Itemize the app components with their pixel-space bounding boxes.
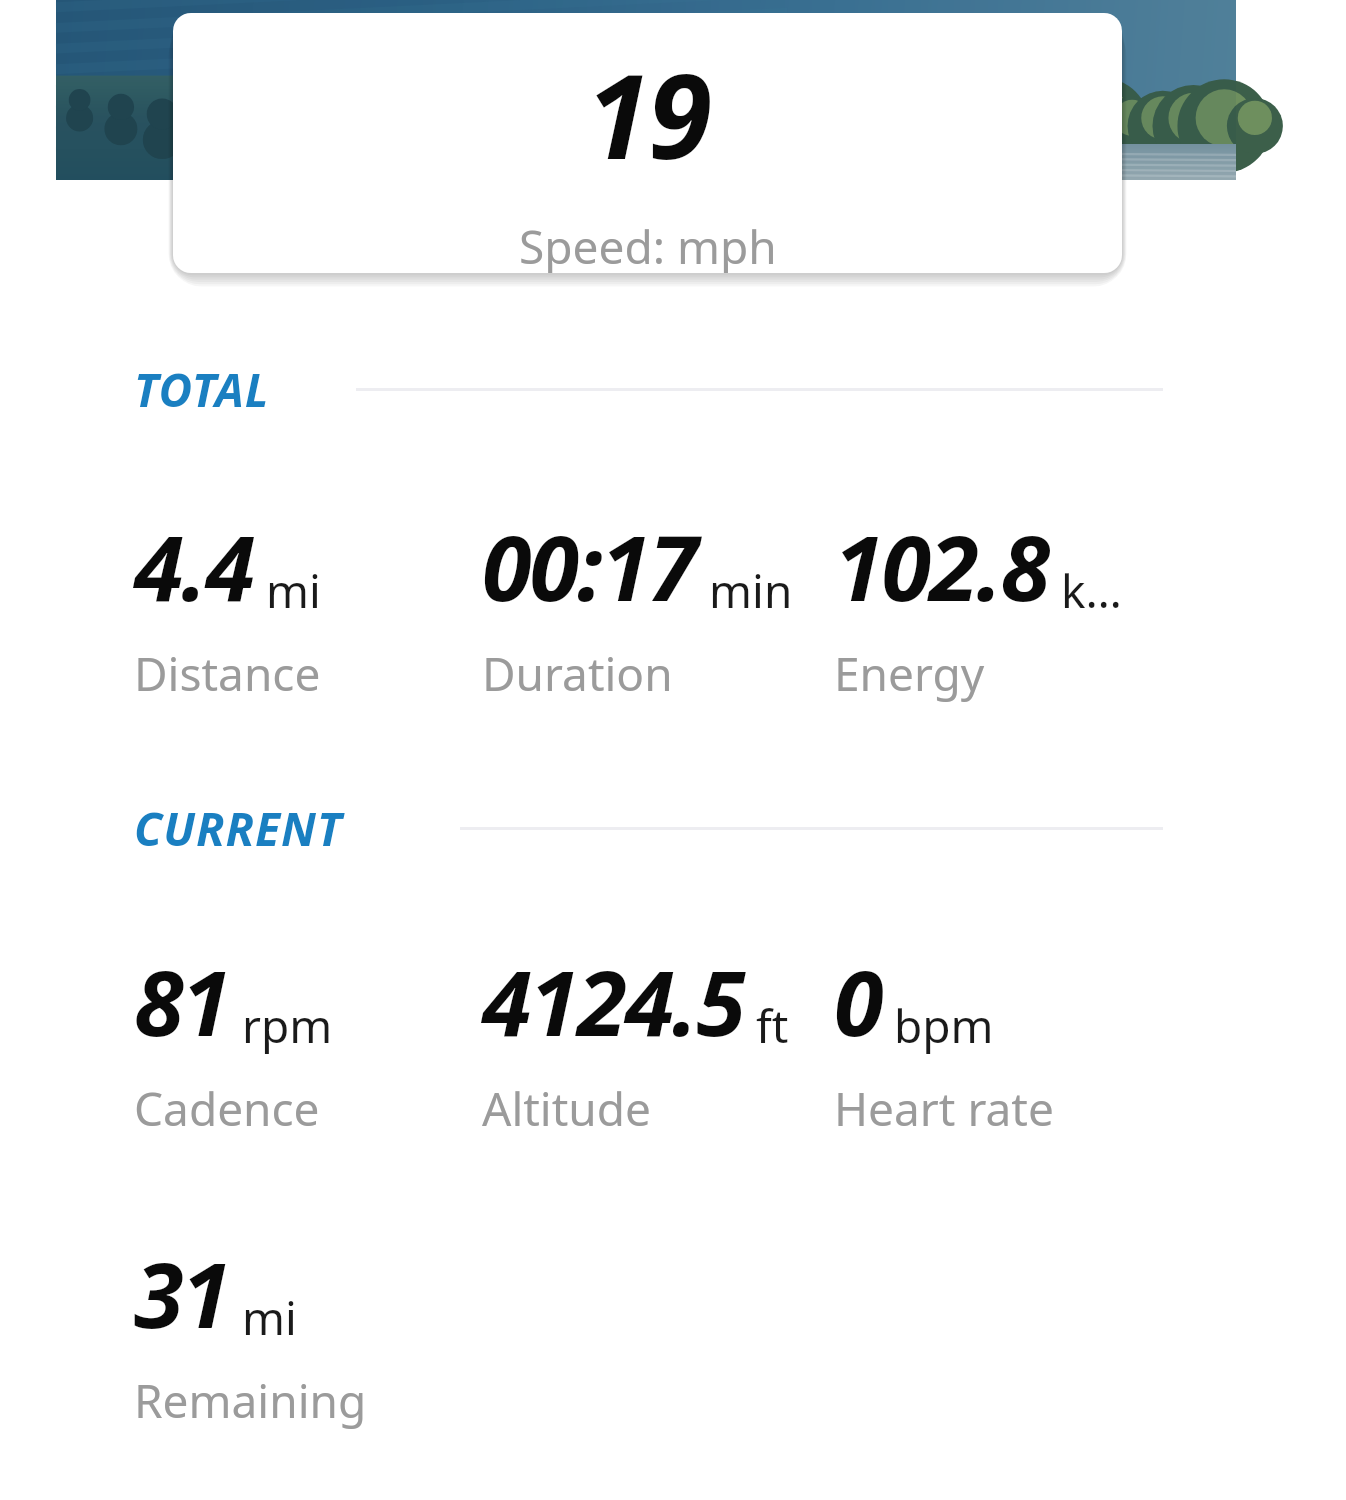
staticText: k… [1061,559,1122,622]
staticText: TOTAL [134,358,356,421]
staticText: Altitude [482,1077,652,1140]
staticText: 31 [134,1232,230,1355]
staticText: 19 [586,35,710,193]
staticText: rpm [242,994,333,1057]
staticText: Heart rate [834,1077,1054,1140]
staticText: min [709,559,793,622]
staticText: mi [242,1286,297,1349]
button[interactable]: 19 [173,13,1122,273]
staticText: Distance [134,642,321,705]
staticText: Duration [482,642,673,705]
staticText: 102.8 [834,505,1049,628]
staticText: CURRENT [134,797,460,860]
staticText: 4.4 [134,505,254,628]
staticText: Remaining range [134,1369,482,1432]
staticText: ft [756,994,789,1057]
staticText: Cadence [134,1077,320,1140]
button[interactable]: Route photo [56,0,1236,180]
staticText: mi [266,559,321,622]
staticText: Energy [834,642,985,705]
staticText: bpm [894,994,994,1057]
staticText: Speed: mph [519,215,777,273]
staticText: 0 [834,940,882,1063]
staticText: 4124.5 [482,940,744,1063]
staticText: 00:17 [482,505,697,628]
staticText: 81 [134,940,230,1063]
